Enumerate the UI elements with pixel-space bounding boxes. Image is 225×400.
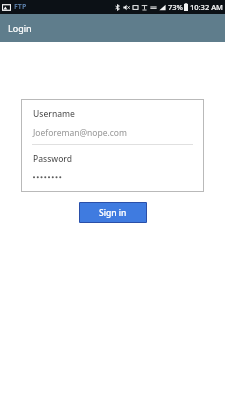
staticText: Login xyxy=(8,22,32,34)
button[interactable]: Sign in xyxy=(79,202,147,223)
staticText: Joeforeman@nope.com xyxy=(33,127,127,139)
staticText: Password xyxy=(33,153,73,165)
staticText: 10:32 AM xyxy=(190,2,223,12)
button[interactable]: Password xyxy=(21,145,204,192)
staticText: Sign in xyxy=(99,207,127,219)
staticText: Username xyxy=(33,108,75,120)
button[interactable]: Username xyxy=(21,99,204,144)
staticText: FTP xyxy=(14,2,27,12)
staticText: 73% xyxy=(168,2,183,12)
